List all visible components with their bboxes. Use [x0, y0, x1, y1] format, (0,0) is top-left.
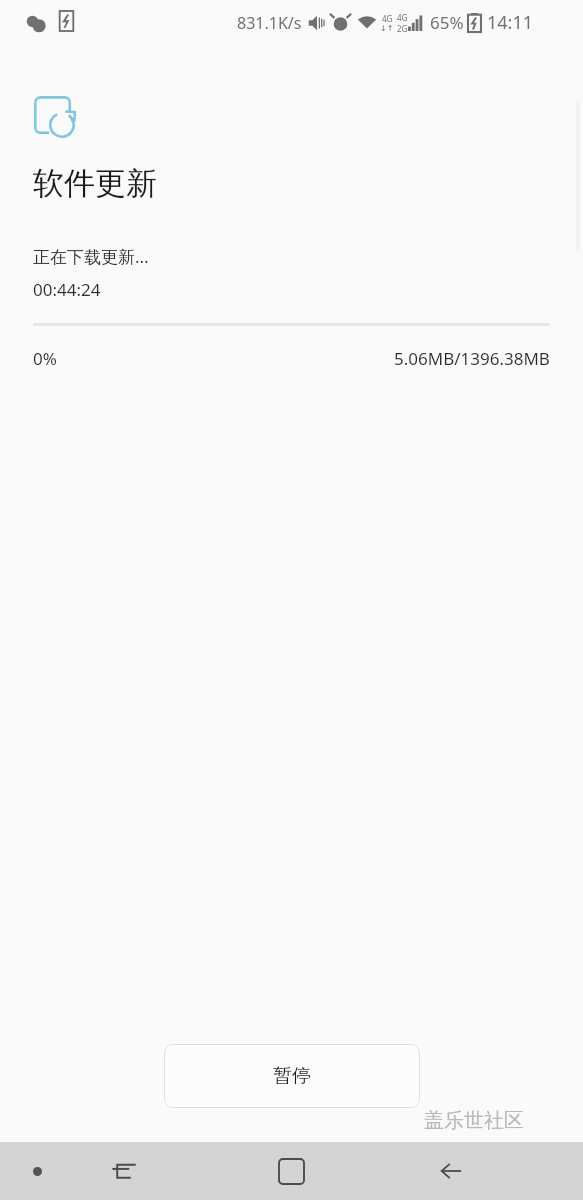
- staticText: ↓↑: [380, 24, 394, 33]
- staticText: 14:11: [487, 10, 534, 35]
- staticText: 2G: [397, 23, 408, 34]
- staticText: 4G: [397, 12, 408, 23]
- staticText: 5.06MB/1396.38MB: [394, 347, 550, 370]
- staticText: 831.1K/s: [237, 12, 302, 34]
- staticText: 软件更新: [33, 164, 157, 203]
- staticText: 00:44:24: [33, 278, 101, 301]
- staticText: @zhenghao623: [379, 1147, 525, 1174]
- staticText: 正在下载更新...: [33, 245, 149, 268]
- other: Software update: [33, 96, 79, 142]
- button[interactable]: Menu: [20, 1142, 54, 1200]
- button[interactable]: 暂停: [164, 1044, 420, 1108]
- staticText: 暂停: [273, 1064, 311, 1088]
- staticText: 盖乐世社区: [424, 1108, 524, 1133]
- staticText: 4G: [382, 13, 393, 24]
- staticText: 0%: [33, 347, 57, 370]
- button[interactable]: Recent apps: [97, 1142, 151, 1200]
- button[interactable]: Home: [264, 1142, 318, 1200]
- button[interactable]: Back: [424, 1142, 478, 1200]
- staticText: 65%: [430, 11, 464, 34]
